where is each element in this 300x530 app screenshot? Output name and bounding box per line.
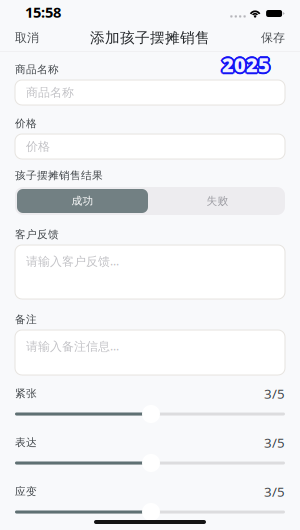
staticText: 价格 [15, 117, 37, 130]
staticText: 2025 [222, 53, 270, 80]
staticText: 表达 [15, 436, 37, 449]
staticText: 2025 [221, 52, 269, 79]
staticText: 2025 [220, 51, 268, 78]
staticText: 请输入备注信息... [26, 338, 119, 354]
staticText: 紧张 [15, 387, 37, 400]
staticText: 2025 [224, 51, 272, 78]
staticText: 3/5 [264, 385, 285, 402]
button[interactable]: 保存 [251, 22, 295, 53]
staticText: 2025 [223, 50, 271, 76]
staticText: 2025 [220, 51, 268, 78]
staticText: 成功 [71, 194, 93, 207]
staticText: 价格 [26, 139, 50, 154]
staticText: 客户反馈 [15, 228, 59, 241]
staticText: 2025 [221, 50, 269, 76]
staticText: 商品名称 [15, 63, 59, 76]
staticText: 2025 [222, 49, 270, 76]
button[interactable]: 取消 [5, 22, 49, 53]
staticText: 取消 [15, 30, 39, 45]
button[interactable]: 成功 [17, 189, 148, 213]
staticText: 孩子摆摊销售结果 [15, 169, 103, 182]
staticText: 2025 [223, 52, 271, 79]
staticText: 商品名称 [26, 85, 74, 100]
staticText: 保存 [261, 30, 285, 45]
staticText: 2025 [224, 51, 272, 78]
staticText: 备注 [15, 313, 37, 326]
staticText: 3/5 [264, 483, 285, 500]
staticText: 2025 [222, 53, 270, 80]
staticText: 应变 [15, 485, 37, 498]
staticText: 请输入客户反馈... [26, 253, 119, 269]
staticText: 2025 [222, 51, 270, 78]
button[interactable]: 失败 [152, 189, 283, 213]
staticText: 3/5 [264, 434, 285, 451]
staticText: 失败 [206, 194, 228, 207]
staticText: 添加孩子摆摊销售 [90, 29, 210, 47]
staticText: 15:58 [25, 2, 61, 22]
staticText: 2025 [222, 49, 270, 76]
